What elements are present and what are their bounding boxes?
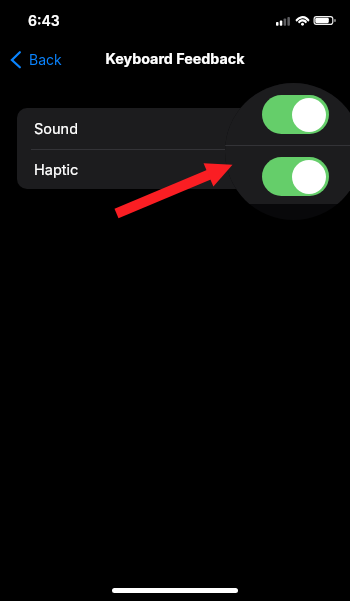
staticText: Haptic bbox=[34, 161, 79, 179]
button[interactable]: Back bbox=[10, 45, 62, 73]
staticText: Back bbox=[29, 51, 62, 68]
staticText: Keyboard Feedback bbox=[0, 50, 350, 67]
staticText: 6:43 bbox=[28, 12, 60, 29]
button[interactable]: Toggle on bbox=[262, 95, 329, 134]
button[interactable]: Toggle on bbox=[262, 157, 329, 196]
button[interactable]: Sound bbox=[17, 108, 333, 148]
staticText: Sound bbox=[34, 120, 79, 138]
button[interactable]: Haptic bbox=[17, 149, 333, 189]
